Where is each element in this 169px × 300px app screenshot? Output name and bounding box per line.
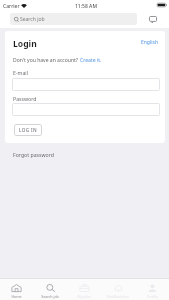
- staticText: Search job: [20, 16, 45, 23]
- button[interactable]: My jobs: [67, 281, 101, 299]
- staticText: Carrier: [3, 3, 20, 10]
- staticText: My jobs: [77, 294, 91, 299]
- staticText: Home: [11, 294, 22, 299]
- staticText: Login: [13, 38, 37, 50]
- staticText: Password: [13, 95, 37, 102]
- staticText: E-mail: [13, 69, 28, 76]
- staticText: 11:58 AM: [75, 3, 97, 10]
- button[interactable]: Messages: [145, 12, 160, 26]
- button[interactable]: Home: [0, 281, 33, 299]
- button[interactable]: Create it.: [80, 57, 102, 64]
- button[interactable]: English: [141, 39, 159, 46]
- staticText: Don't you have an account?: [13, 57, 80, 64]
- button[interactable]: Search job: [10, 13, 137, 25]
- button[interactable]: Search job: [33, 281, 67, 299]
- button[interactable]: Forgot password: [13, 151, 54, 158]
- button[interactable]: [12, 103, 160, 116]
- button[interactable]: Profile: [135, 281, 169, 299]
- staticText: Search job: [41, 294, 59, 299]
- button[interactable]: [12, 78, 160, 91]
- button[interactable]: LOG IN: [14, 124, 42, 136]
- staticText: Notifications: [107, 294, 129, 299]
- staticText: Profile: [147, 294, 158, 299]
- staticText: LOG IN: [19, 127, 38, 133]
